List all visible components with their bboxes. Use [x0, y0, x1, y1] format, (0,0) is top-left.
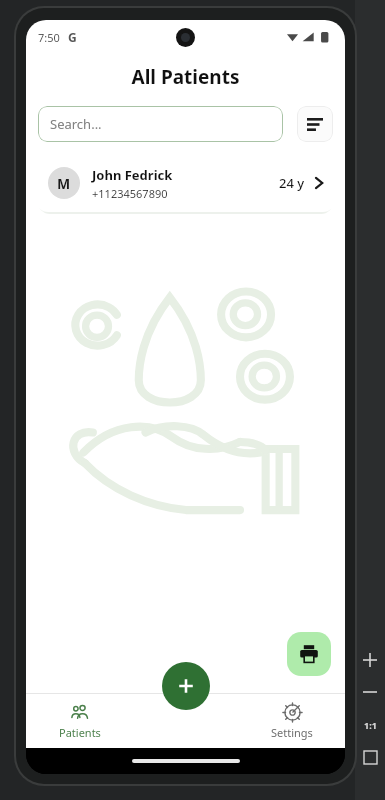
button[interactable]: 1:1: [355, 708, 385, 741]
staticText: John Fedrick: [92, 166, 173, 184]
staticText: All Patients: [26, 64, 345, 90]
staticText: +11234567890: [92, 186, 168, 201]
button[interactable]: Add patient: [162, 662, 210, 710]
button[interactable]: Patients: [26, 694, 133, 748]
button[interactable]: Zoom out: [355, 676, 385, 708]
staticText: 7:50: [38, 30, 60, 45]
button[interactable]: Search...: [38, 106, 283, 142]
button[interactable]: Zoom in: [355, 644, 385, 676]
button[interactable]: Print: [287, 632, 331, 676]
staticText: Search...: [50, 115, 102, 133]
staticText: 1:1: [364, 719, 377, 731]
staticText: G: [68, 29, 77, 45]
button[interactable]: M: [36, 154, 335, 212]
staticText: M: [57, 174, 71, 193]
staticText: 24 y: [279, 174, 305, 192]
staticText: Settings: [271, 725, 313, 740]
button[interactable]: Filter: [297, 106, 333, 142]
staticText: Patients: [59, 725, 101, 740]
button[interactable]: Settings: [239, 694, 345, 748]
button[interactable]: Resize: [355, 741, 385, 774]
